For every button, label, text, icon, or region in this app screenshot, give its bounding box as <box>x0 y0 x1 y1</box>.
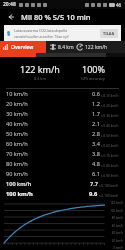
button[interactable]: 70 km/h <box>6 149 119 159</box>
staticText: 1.2 <box>92 100 100 108</box>
staticText: 20:48 <box>3 1 16 8</box>
staticText: s 0-100 km/h <box>99 184 119 188</box>
staticText: 20 km/h <box>111 239 123 243</box>
staticText: 100 km/h <box>6 190 33 198</box>
button[interactable]: 30 km/h <box>6 109 119 119</box>
staticText: 122 km/h <box>85 44 108 51</box>
staticText: 70 km/h <box>6 150 28 158</box>
staticText: 2.1 <box>92 120 100 128</box>
staticText: 20 km/h <box>6 100 28 108</box>
staticText: 80 km/h <box>6 160 28 168</box>
button[interactable]: 90 km/h <box>6 169 119 179</box>
staticText: s 0-20 km/h <box>101 104 119 108</box>
staticText: s 0-80 km/h <box>101 164 119 168</box>
staticText: s 0-30 km/h <box>101 114 119 118</box>
staticText: 3.4 <box>92 140 100 148</box>
button[interactable]: 100 km/h <box>6 189 119 199</box>
button[interactable]: 50 km/h <box>6 129 119 139</box>
staticText: 60 km/h <box>6 140 28 148</box>
staticText: s 0-40 km/h <box>101 124 119 128</box>
staticText: 4.8 <box>92 160 100 168</box>
button[interactable]: Overview <box>3 41 43 53</box>
button[interactable]: 20 km/h <box>6 99 119 109</box>
staticText: Mll 80 % 5/5 10 min <box>21 12 91 22</box>
staticText: 8.4 km <box>34 76 46 81</box>
staticText: 40 km/h <box>111 231 123 235</box>
staticText: 90 km/h <box>6 170 28 178</box>
button[interactable]: Back <box>5 11 17 23</box>
staticText: Lataussasema CO2-lataulopolla <box>14 28 68 33</box>
button[interactable]: 100 km/h <box>6 179 119 189</box>
button[interactable]: 80 km/h <box>6 159 119 169</box>
staticText: s 0-70 km/h <box>101 154 119 158</box>
staticText: 46 <box>116 2 122 8</box>
staticText: 80 km/h <box>111 216 123 220</box>
staticText: 50 km/h <box>6 130 28 138</box>
staticText: 122 km/h <box>20 63 60 75</box>
button[interactable]: TILAA <box>103 31 115 36</box>
staticText: GPS accuracy <box>81 76 105 81</box>
staticText: Overview <box>11 44 34 51</box>
button[interactable]: 60 km/h <box>6 139 119 149</box>
staticText: s 0-90 km/h <box>101 174 119 178</box>
staticText: varaslohtuullen autoihin. Tilaa nyt! <box>14 34 69 39</box>
staticText: 100 km/h <box>110 209 123 213</box>
staticText: 6.1 <box>92 170 100 178</box>
button[interactable]: 10 km/h <box>6 89 119 99</box>
staticText: 40 km/h <box>6 120 28 128</box>
staticText: 0.6 <box>92 90 100 98</box>
staticText: TILAA <box>103 31 115 36</box>
staticText: s 0-100 km/h <box>99 194 119 198</box>
button[interactable]: Lataussasema CO2-lataulopolla <box>4 25 121 41</box>
staticText: 9.6 <box>89 190 98 198</box>
staticText: s 0-50 km/h <box>101 134 119 138</box>
staticText: 8.4 km <box>58 44 74 51</box>
staticText: s 0-60 km/h <box>101 144 119 148</box>
staticText: 30 km/h <box>6 110 28 118</box>
staticText: 0 km/h <box>113 246 123 250</box>
staticText: s 0-10 km/h <box>101 94 119 98</box>
staticText: 3.8 <box>92 150 100 158</box>
staticText: 100% <box>82 63 105 75</box>
staticText: 100 km/h <box>6 180 32 188</box>
staticText: 120 km/h <box>110 201 123 205</box>
button[interactable]: 40 km/h <box>6 119 119 129</box>
staticText: 7.7 <box>90 180 98 188</box>
staticText: 2.8 <box>92 130 100 138</box>
staticText: 10 km/h <box>6 90 28 98</box>
staticText: 60 km/h <box>111 224 123 228</box>
staticText: 1.7 <box>92 110 100 118</box>
